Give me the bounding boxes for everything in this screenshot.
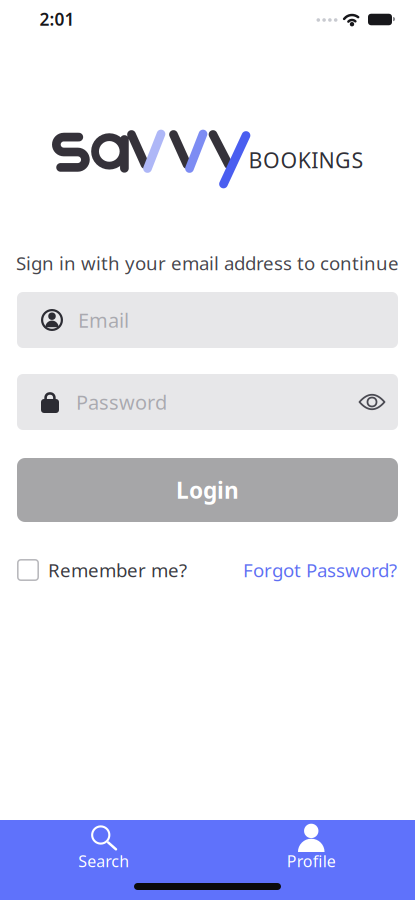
staticText: Remember me? — [48, 558, 187, 582]
button[interactable]: Email — [17, 292, 398, 348]
staticText: I — [311, 146, 318, 174]
staticText: Forgot Password? — [243, 558, 397, 582]
staticText: B — [249, 146, 263, 174]
staticText: O — [280, 146, 297, 174]
button[interactable]: Remember me? — [17, 558, 237, 582]
staticText: O — [263, 146, 280, 174]
staticText: 2:01 — [39, 7, 74, 30]
staticText: S — [351, 146, 363, 174]
staticText: Email — [78, 307, 129, 333]
staticText: Password — [76, 389, 167, 415]
button[interactable]: Search — [0, 820, 207, 900]
button[interactable]: Login — [17, 458, 398, 522]
staticText: Login — [176, 475, 239, 505]
button[interactable]: Password — [17, 374, 398, 430]
button[interactable]: Forgot Password? — [197, 558, 397, 582]
button[interactable] — [359, 394, 385, 410]
staticText: N — [319, 146, 335, 174]
staticText: G — [335, 146, 351, 174]
staticText: Profile — [287, 850, 336, 872]
staticText: Sign in with your email address to conti… — [16, 251, 399, 275]
button[interactable]: Profile — [207, 820, 415, 900]
staticText: K — [298, 146, 311, 174]
staticText: Search — [78, 850, 129, 872]
